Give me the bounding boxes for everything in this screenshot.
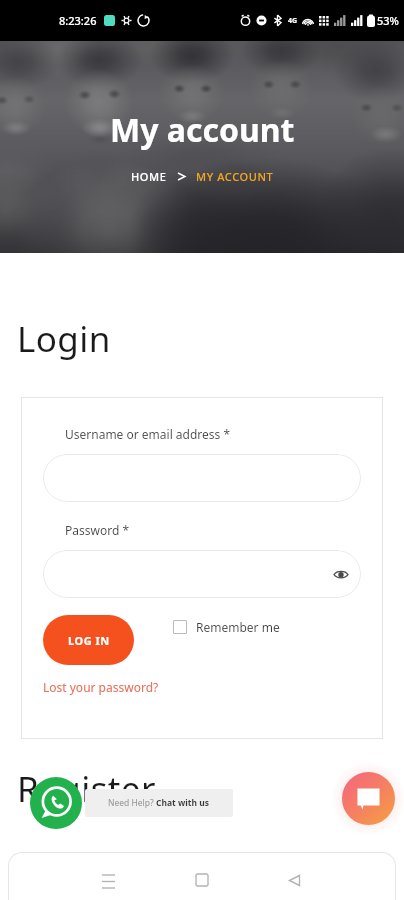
staticText: Chat with us [156,797,210,809]
button[interactable]: Chat on WhatsApp [30,777,82,829]
staticText: 4G [288,16,298,26]
staticText: My account [110,108,295,152]
button[interactable]: Open chat [342,772,395,825]
staticText: 8:23:26 [59,13,97,28]
button[interactable]: Home [180,860,224,900]
button[interactable]: Show password [43,550,361,598]
button[interactable]: Lost your password? [43,679,159,695]
staticText: 53% [377,13,399,28]
staticText: Need Help? [108,797,156,809]
staticText: LOG IN [68,633,110,648]
button[interactable]: Need Help? [85,789,233,817]
staticText: Register [17,765,156,813]
staticText: Username or email address * [65,426,231,442]
button[interactable]: Recent apps [86,860,130,900]
button[interactable]: HOME [131,169,167,184]
button[interactable]: LOG IN [43,615,134,665]
staticText: Login [17,315,111,363]
staticText: Password * [65,522,130,538]
button[interactable]: Show password [332,565,350,583]
button[interactable]: Back [272,860,316,900]
staticText: Remember me [196,619,280,635]
button[interactable]: Remember me [173,619,280,635]
staticText: MY ACCOUNT [196,169,274,184]
button[interactable] [43,454,361,502]
